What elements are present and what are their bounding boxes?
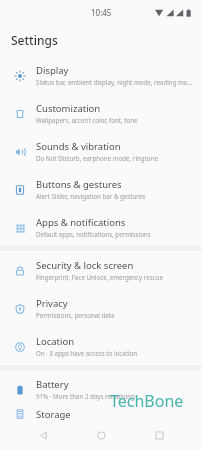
button[interactable]: Buttons & gestures xyxy=(0,170,202,208)
staticText: Battery xyxy=(36,378,69,391)
button[interactable]: Sounds & vibration xyxy=(0,132,202,170)
button[interactable]: Display xyxy=(0,56,202,94)
staticText: Security & lock screen xyxy=(36,259,134,272)
staticText: Buttons & gestures xyxy=(36,178,122,191)
button[interactable]: Recent apps xyxy=(144,420,174,450)
staticText: Status bar, ambient display, night mode,… xyxy=(36,78,194,86)
staticText: Sounds & vibration xyxy=(36,140,121,153)
button[interactable]: Location xyxy=(0,327,202,365)
button[interactable]: Customization xyxy=(0,94,202,132)
button[interactable]: Security & lock screen xyxy=(0,251,202,289)
staticText: 10:45 xyxy=(91,7,112,18)
staticText: Apps & notifications xyxy=(36,216,126,229)
staticText: Display xyxy=(36,64,69,77)
staticText: TechBone xyxy=(110,390,184,412)
staticText: Do Not Disturb, earphone mode, ringtone xyxy=(36,154,158,162)
staticText: Fingerprint, Face Unlock, emergency resc… xyxy=(36,273,164,281)
button[interactable]: Storage xyxy=(0,408,202,420)
button[interactable]: Privacy xyxy=(0,289,202,327)
button[interactable]: Home xyxy=(86,420,116,450)
staticText: Privacy xyxy=(36,297,68,310)
staticText: Alert Slider, navigation bar & gestures xyxy=(36,192,146,200)
staticText: Permissions, personal data xyxy=(36,311,115,319)
staticText: Storage xyxy=(36,408,71,420)
staticText: Location xyxy=(36,335,75,348)
button[interactable]: Battery xyxy=(0,370,202,408)
staticText: 91% · More than 2 days remaining xyxy=(36,392,135,400)
staticText: Customization xyxy=(36,102,101,115)
staticText: Default apps, notifications, permissions xyxy=(36,230,151,238)
button[interactable]: Back xyxy=(28,420,58,450)
staticText: Settings xyxy=(11,32,58,48)
button[interactable]: Apps & notifications xyxy=(0,208,202,246)
staticText: On · 8 apps have access to location xyxy=(36,349,138,357)
staticText: Wallpapers, accent color, font, tone xyxy=(36,116,138,124)
